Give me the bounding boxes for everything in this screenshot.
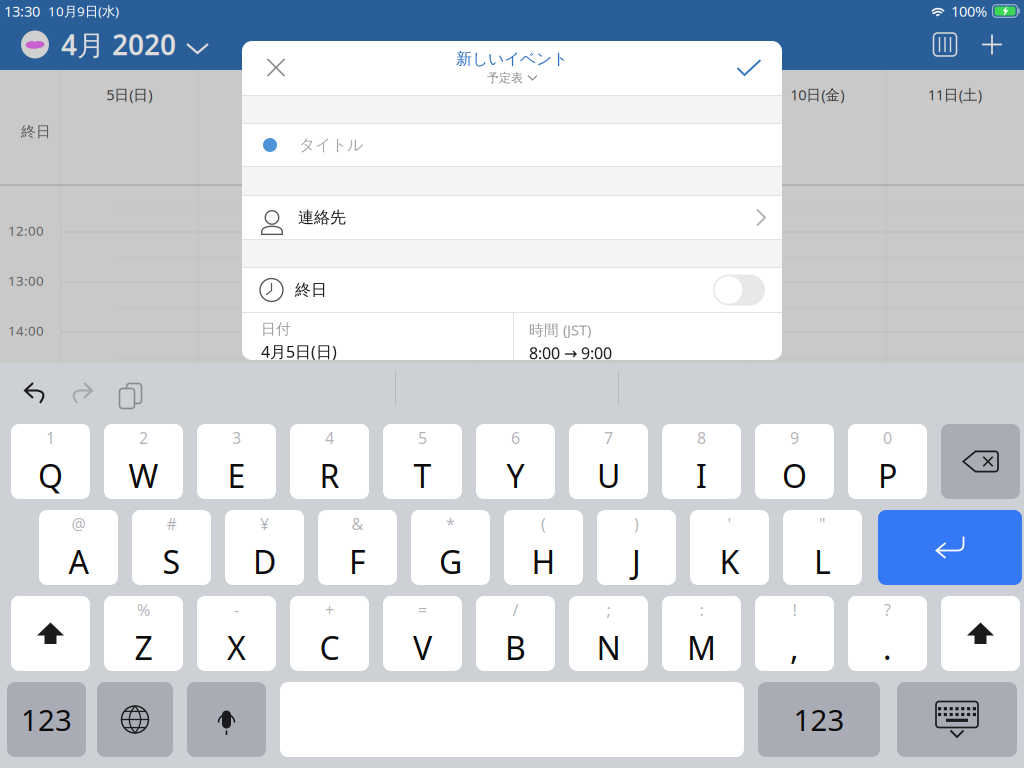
button[interactable]: 時間 (JST) bbox=[514, 320, 783, 367]
staticText: Q bbox=[38, 454, 63, 497]
staticText: J bbox=[632, 540, 641, 583]
button[interactable]: Hide keyboard bbox=[897, 682, 1017, 757]
button[interactable]: 4月 2020 bbox=[0, 22, 218, 66]
button[interactable]: / bbox=[476, 596, 555, 671]
button[interactable]: % bbox=[104, 596, 183, 671]
button[interactable]: 123 bbox=[7, 682, 86, 757]
button[interactable]: " bbox=[783, 510, 862, 585]
staticText: 14:00 bbox=[8, 322, 44, 339]
button[interactable]: ! bbox=[755, 596, 834, 671]
staticText: T bbox=[413, 454, 431, 497]
button[interactable]: 5 bbox=[383, 424, 462, 499]
staticText: % bbox=[137, 599, 150, 620]
button[interactable]: - bbox=[197, 596, 276, 671]
staticText: 5日(日) bbox=[106, 85, 152, 104]
button[interactable]: + bbox=[290, 596, 369, 671]
staticText: ! bbox=[792, 599, 796, 620]
staticText: : bbox=[699, 599, 703, 620]
button[interactable]: 新しいイベント bbox=[242, 49, 782, 95]
button[interactable]: 8 bbox=[662, 424, 741, 499]
staticText: W bbox=[128, 454, 158, 497]
button[interactable]: ' bbox=[690, 510, 769, 585]
staticText: 8日(水) bbox=[519, 85, 565, 104]
button[interactable]: @ bbox=[39, 510, 118, 585]
button[interactable]: * bbox=[411, 510, 490, 585]
button[interactable]: All-day bbox=[713, 274, 765, 305]
button[interactable]: Shift bbox=[11, 596, 90, 671]
staticText: K bbox=[719, 540, 739, 583]
button[interactable]: Save event bbox=[716, 40, 782, 95]
button[interactable]: New event bbox=[960, 22, 1024, 67]
staticText: 4月 2020 bbox=[61, 26, 176, 63]
button[interactable]: Undo bbox=[17, 373, 57, 413]
button[interactable]: = bbox=[383, 596, 462, 671]
button[interactable]: ) bbox=[597, 510, 676, 585]
staticText: 6日(月) bbox=[244, 85, 290, 104]
button[interactable]: 3 bbox=[197, 424, 276, 499]
staticText: X bbox=[227, 626, 246, 669]
staticText: 2 bbox=[139, 427, 148, 448]
staticText: 0 bbox=[883, 427, 892, 448]
staticText: + bbox=[325, 599, 334, 620]
staticText: 100% bbox=[951, 1, 987, 21]
button[interactable]: 0 bbox=[848, 424, 927, 499]
staticText: 8:00 → 9:00 bbox=[529, 342, 612, 364]
button[interactable]: 1 bbox=[11, 424, 90, 499]
staticText: 終日 bbox=[295, 280, 327, 300]
staticText: S bbox=[162, 540, 180, 583]
staticText: 8 bbox=[697, 427, 706, 448]
staticText: # bbox=[166, 513, 176, 534]
button[interactable]: 4 bbox=[290, 424, 369, 499]
staticText: 123 bbox=[793, 700, 844, 739]
staticText: 12:00 bbox=[8, 222, 44, 239]
button[interactable]: Dictation bbox=[187, 682, 266, 757]
button[interactable]: Calendar layout bbox=[891, 22, 947, 67]
staticText: 10月9日(水) bbox=[48, 2, 119, 20]
button[interactable]: 日付 bbox=[242, 320, 513, 367]
button[interactable]: Return bbox=[878, 510, 1022, 585]
button[interactable]: & bbox=[318, 510, 397, 585]
button[interactable]: 123 bbox=[758, 682, 880, 757]
staticText: ) bbox=[634, 513, 639, 534]
button[interactable]: : bbox=[662, 596, 741, 671]
staticText: P bbox=[878, 454, 897, 497]
staticText: I bbox=[696, 454, 707, 497]
staticText: - bbox=[234, 599, 239, 620]
button[interactable]: Redo bbox=[61, 373, 101, 413]
button[interactable]: 7 bbox=[569, 424, 648, 499]
staticText: @ bbox=[71, 513, 85, 534]
button[interactable]: Switch keyboard bbox=[97, 682, 173, 757]
staticText: M bbox=[687, 626, 716, 669]
button[interactable]: Delete bbox=[941, 424, 1020, 499]
staticText: N bbox=[596, 626, 620, 669]
staticText: & bbox=[351, 513, 363, 534]
staticText: B bbox=[505, 626, 526, 669]
button[interactable]: 9 bbox=[755, 424, 834, 499]
staticText: 1 bbox=[46, 427, 55, 448]
staticText: ? bbox=[884, 599, 891, 620]
staticText: R bbox=[319, 454, 339, 497]
staticText: ¥ bbox=[260, 513, 269, 534]
staticText: 新しいイベント bbox=[456, 49, 568, 69]
button[interactable]: ; bbox=[569, 596, 648, 671]
button[interactable]: Close bbox=[242, 40, 310, 95]
button[interactable]: # bbox=[132, 510, 211, 585]
staticText: 13:30 bbox=[4, 1, 40, 21]
button[interactable]: 2 bbox=[104, 424, 183, 499]
staticText: L bbox=[814, 540, 831, 583]
staticText: 5 bbox=[418, 427, 427, 448]
button[interactable]: Shift bbox=[941, 596, 1020, 671]
staticText: 11日(土) bbox=[928, 85, 982, 104]
staticText: 4 bbox=[325, 427, 334, 448]
button[interactable]: ? bbox=[848, 596, 927, 671]
button[interactable]: ¥ bbox=[225, 510, 304, 585]
button[interactable]: ( bbox=[504, 510, 583, 585]
staticText: ' bbox=[727, 513, 731, 534]
button[interactable]: Paste bbox=[107, 373, 147, 413]
staticText: * bbox=[446, 513, 455, 534]
staticText: 123 bbox=[21, 700, 72, 739]
button[interactable]: 連絡先 bbox=[242, 196, 782, 239]
button[interactable]: 6 bbox=[476, 424, 555, 499]
staticText: 9日(木) bbox=[657, 85, 703, 104]
